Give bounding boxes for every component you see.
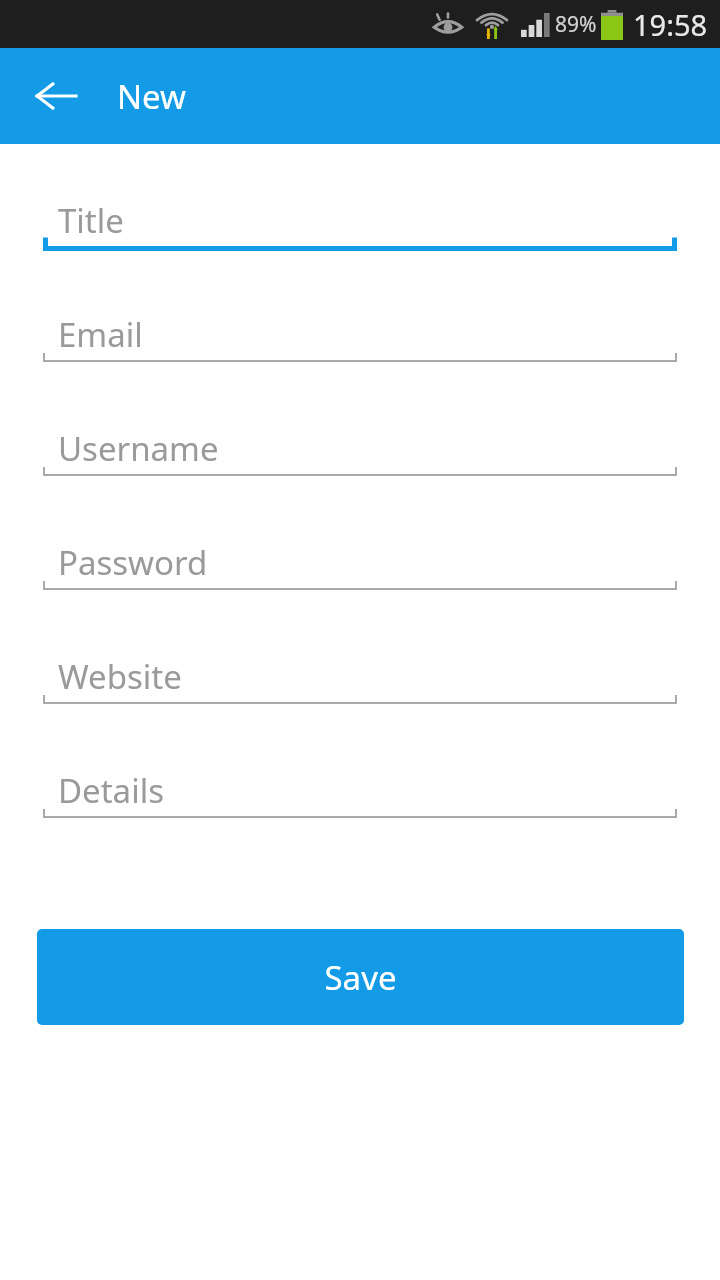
- staticText: Email: [58, 312, 143, 357]
- button[interactable]: Title: [0, 197, 720, 311]
- button[interactable]: Email: [0, 311, 720, 425]
- button[interactable]: Password: [0, 539, 720, 653]
- button[interactable]: Website: [0, 653, 720, 767]
- staticText: Password: [58, 540, 208, 585]
- staticText: New: [117, 74, 186, 119]
- button[interactable]: Username: [0, 425, 720, 539]
- staticText: Username: [58, 426, 219, 471]
- staticText: Save: [324, 955, 397, 1000]
- button[interactable]: Back: [20, 60, 92, 132]
- staticText: Details: [58, 768, 164, 813]
- staticText: Title: [58, 198, 124, 243]
- button[interactable]: Save: [37, 929, 684, 1025]
- staticText: 19:58: [633, 5, 708, 44]
- button[interactable]: Details: [0, 767, 720, 881]
- staticText: 89%: [555, 10, 597, 39]
- staticText: Website: [58, 654, 182, 699]
